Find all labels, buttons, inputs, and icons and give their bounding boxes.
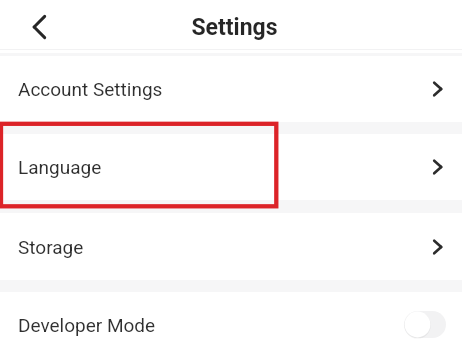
button[interactable]: Account Settings: [0, 56, 462, 122]
staticText: Settings: [191, 14, 278, 41]
staticText: Storage: [18, 236, 84, 258]
button[interactable]: Back: [22, 9, 54, 41]
button[interactable]: Language: [0, 134, 462, 200]
staticText: Language: [18, 156, 102, 178]
button[interactable]: Storage: [0, 213, 462, 280]
button[interactable]: Developer Mode toggle: [404, 311, 446, 338]
button[interactable]: Developer Mode: [0, 292, 462, 357]
staticText: Account Settings: [18, 78, 163, 100]
staticText: Developer Mode: [18, 314, 156, 336]
